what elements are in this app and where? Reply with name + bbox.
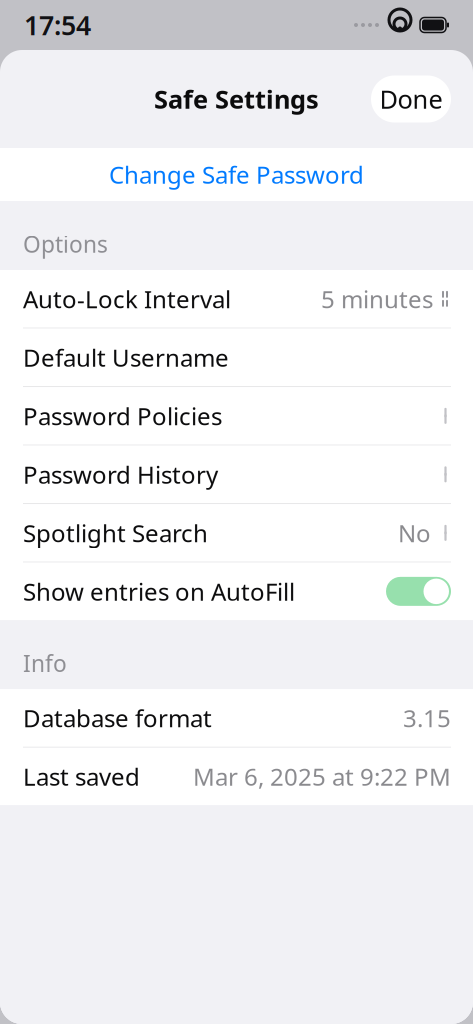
staticText: Change Safe Password — [109, 159, 364, 190]
staticText: Show entries on AutoFill — [23, 575, 295, 607]
staticText: Password Policies — [23, 400, 222, 432]
button[interactable]: Last saved — [0, 748, 473, 805]
button[interactable]: Auto-Lock Interval — [0, 270, 473, 328]
staticText: Database format — [23, 702, 212, 734]
staticText: 3.15 — [403, 702, 451, 734]
button[interactable]: Change Safe Password — [0, 148, 473, 201]
staticText: 5 minutes — [321, 283, 433, 315]
staticText: Done — [379, 82, 442, 116]
staticText: Safe Settings — [154, 82, 319, 116]
staticText: Last saved — [23, 760, 140, 792]
staticText: Mar 6, 2025 at 9:22 PM — [193, 760, 451, 792]
button[interactable]: Database format — [0, 689, 473, 747]
staticText: Password History — [23, 458, 218, 490]
button[interactable]: Done — [371, 75, 451, 122]
staticText: No — [398, 517, 431, 549]
staticText: Options — [23, 229, 108, 259]
staticText: Default Username — [23, 341, 229, 373]
staticText: Spotlight Search — [23, 517, 208, 549]
button[interactable]: Password History — [0, 446, 473, 503]
button[interactable]: Spotlight Search — [0, 504, 473, 562]
button[interactable]: Password Policies — [0, 387, 473, 445]
staticText: 17:54 — [24, 7, 91, 43]
button[interactable]: Default Username — [0, 329, 473, 386]
button[interactable]: Show entries on AutoFill — [0, 563, 473, 620]
staticText: Info — [23, 648, 67, 678]
staticText: Auto-Lock Interval — [23, 283, 231, 315]
